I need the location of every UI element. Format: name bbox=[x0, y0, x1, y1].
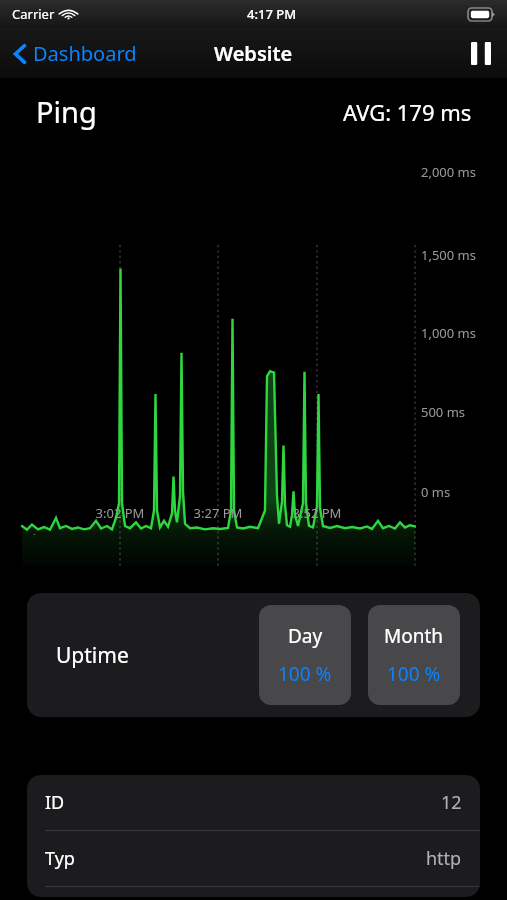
staticText: 0 ms bbox=[421, 483, 451, 501]
staticText: Ping bbox=[36, 92, 97, 131]
staticText: Month bbox=[384, 623, 444, 649]
staticText: 1,500 ms bbox=[421, 246, 476, 264]
staticText: 12 bbox=[441, 790, 462, 815]
staticText: 3:02 PM bbox=[84, 504, 156, 522]
staticText: 4:17 PM bbox=[247, 5, 297, 23]
staticText: AVG: 179 ms bbox=[343, 97, 472, 127]
staticText: 100 % bbox=[387, 661, 441, 687]
staticText: Time bbox=[26, 531, 54, 535]
staticText: Website bbox=[214, 40, 293, 67]
staticText: Uptime bbox=[56, 641, 129, 670]
button[interactable]: Typ bbox=[27, 831, 480, 886]
staticText: 100 % bbox=[278, 661, 332, 687]
staticText: 3:27 PM bbox=[182, 504, 254, 522]
staticText: ID bbox=[45, 790, 65, 815]
staticText: http bbox=[426, 846, 462, 871]
staticText: 1,000 ms bbox=[421, 324, 476, 342]
button[interactable]: ID bbox=[27, 775, 480, 830]
button[interactable]: Pause bbox=[455, 32, 507, 75]
staticText: Typ bbox=[45, 846, 75, 871]
staticText: 500 ms bbox=[421, 403, 466, 421]
button[interactable]: Day bbox=[259, 605, 351, 705]
staticText: Dashboard bbox=[33, 40, 137, 67]
staticText: Carrier bbox=[12, 5, 55, 23]
staticText: 3:52 PM bbox=[281, 504, 353, 522]
button[interactable]: Month bbox=[368, 605, 460, 705]
button[interactable]: Dashboard bbox=[0, 34, 147, 73]
staticText: Day bbox=[288, 623, 323, 649]
staticText: 2,000 ms bbox=[421, 163, 476, 181]
